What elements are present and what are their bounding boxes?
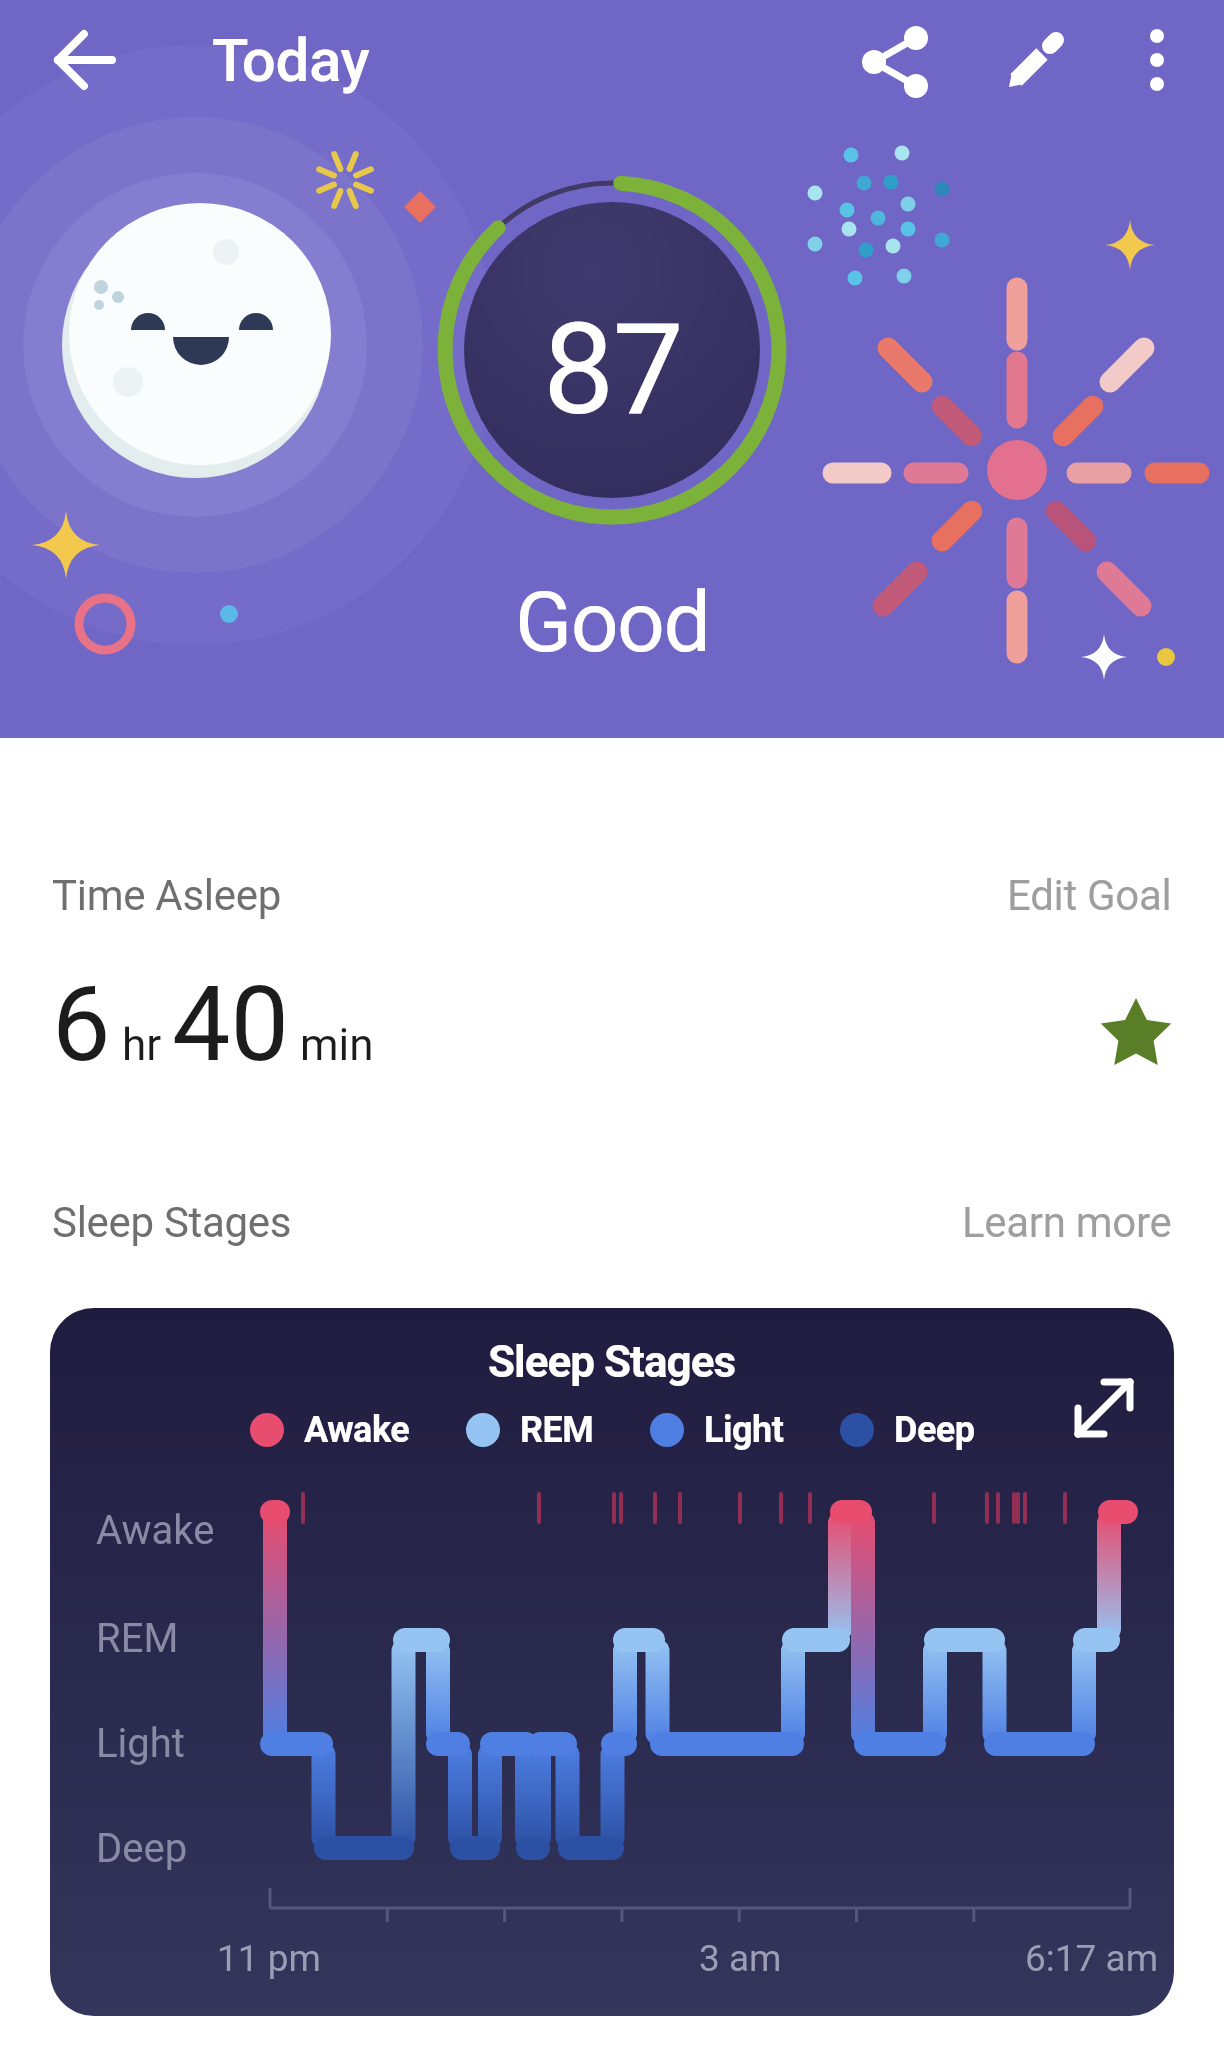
staticText: Light [96, 1720, 185, 1767]
staticText: Light [704, 1409, 784, 1451]
staticText: Deep [96, 1825, 188, 1872]
staticText: 6:17 am [1025, 1937, 1159, 1980]
staticText: hr [111, 1019, 172, 1071]
button[interactable]: Learn more [962, 1198, 1172, 1247]
staticText: Awake [96, 1507, 215, 1554]
staticText: Deep [894, 1409, 975, 1451]
staticText: Time Asleep [52, 871, 281, 920]
staticText: Sleep Stages [488, 1336, 736, 1388]
staticText: REM [520, 1409, 594, 1451]
button[interactable] [46, 24, 118, 96]
staticText: 87 [543, 295, 682, 444]
staticText: 3 am [699, 1937, 782, 1980]
button[interactable] [999, 24, 1071, 96]
button[interactable]: Sleep Stages [50, 1308, 1174, 2016]
button[interactable] [859, 24, 931, 96]
staticText: 11 pm [217, 1937, 321, 1980]
button[interactable] [1068, 1362, 1144, 1438]
staticText: Awake [304, 1409, 410, 1451]
staticText: REM [96, 1615, 179, 1662]
button[interactable]: Today [212, 25, 370, 95]
staticText: 40 [172, 964, 289, 1086]
staticText: min [289, 1019, 374, 1071]
button[interactable]: Edit Goal [1007, 871, 1172, 920]
staticText: Sleep Stages [52, 1198, 292, 1247]
staticText: Good [515, 573, 710, 671]
staticText: 6 [52, 964, 111, 1086]
button[interactable] [1121, 24, 1193, 96]
